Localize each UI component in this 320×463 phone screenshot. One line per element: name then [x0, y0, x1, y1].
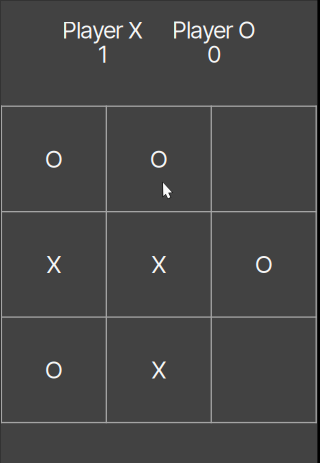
staticText: O: [45, 144, 62, 173]
button[interactable]: O: [106, 106, 211, 212]
button[interactable]: [211, 106, 316, 212]
button[interactable]: O: [211, 212, 316, 317]
button[interactable]: O: [1, 106, 106, 212]
button[interactable]: Player X: [47, 0, 158, 106]
button[interactable]: X: [1, 212, 106, 317]
staticText: O: [150, 144, 167, 173]
staticText: X: [47, 250, 61, 279]
staticText: 0: [207, 40, 220, 68]
staticText: Player X: [62, 16, 142, 44]
staticText: Player O: [172, 16, 255, 44]
button[interactable]: Player O: [158, 0, 270, 106]
button[interactable]: O: [1, 317, 106, 423]
button[interactable]: X: [106, 317, 211, 423]
button[interactable]: [211, 317, 316, 423]
staticText: X: [152, 250, 166, 279]
staticText: O: [45, 355, 62, 384]
staticText: O: [255, 250, 272, 279]
button[interactable]: X: [106, 212, 211, 317]
staticText: X: [152, 355, 166, 384]
staticText: 1: [98, 40, 106, 68]
